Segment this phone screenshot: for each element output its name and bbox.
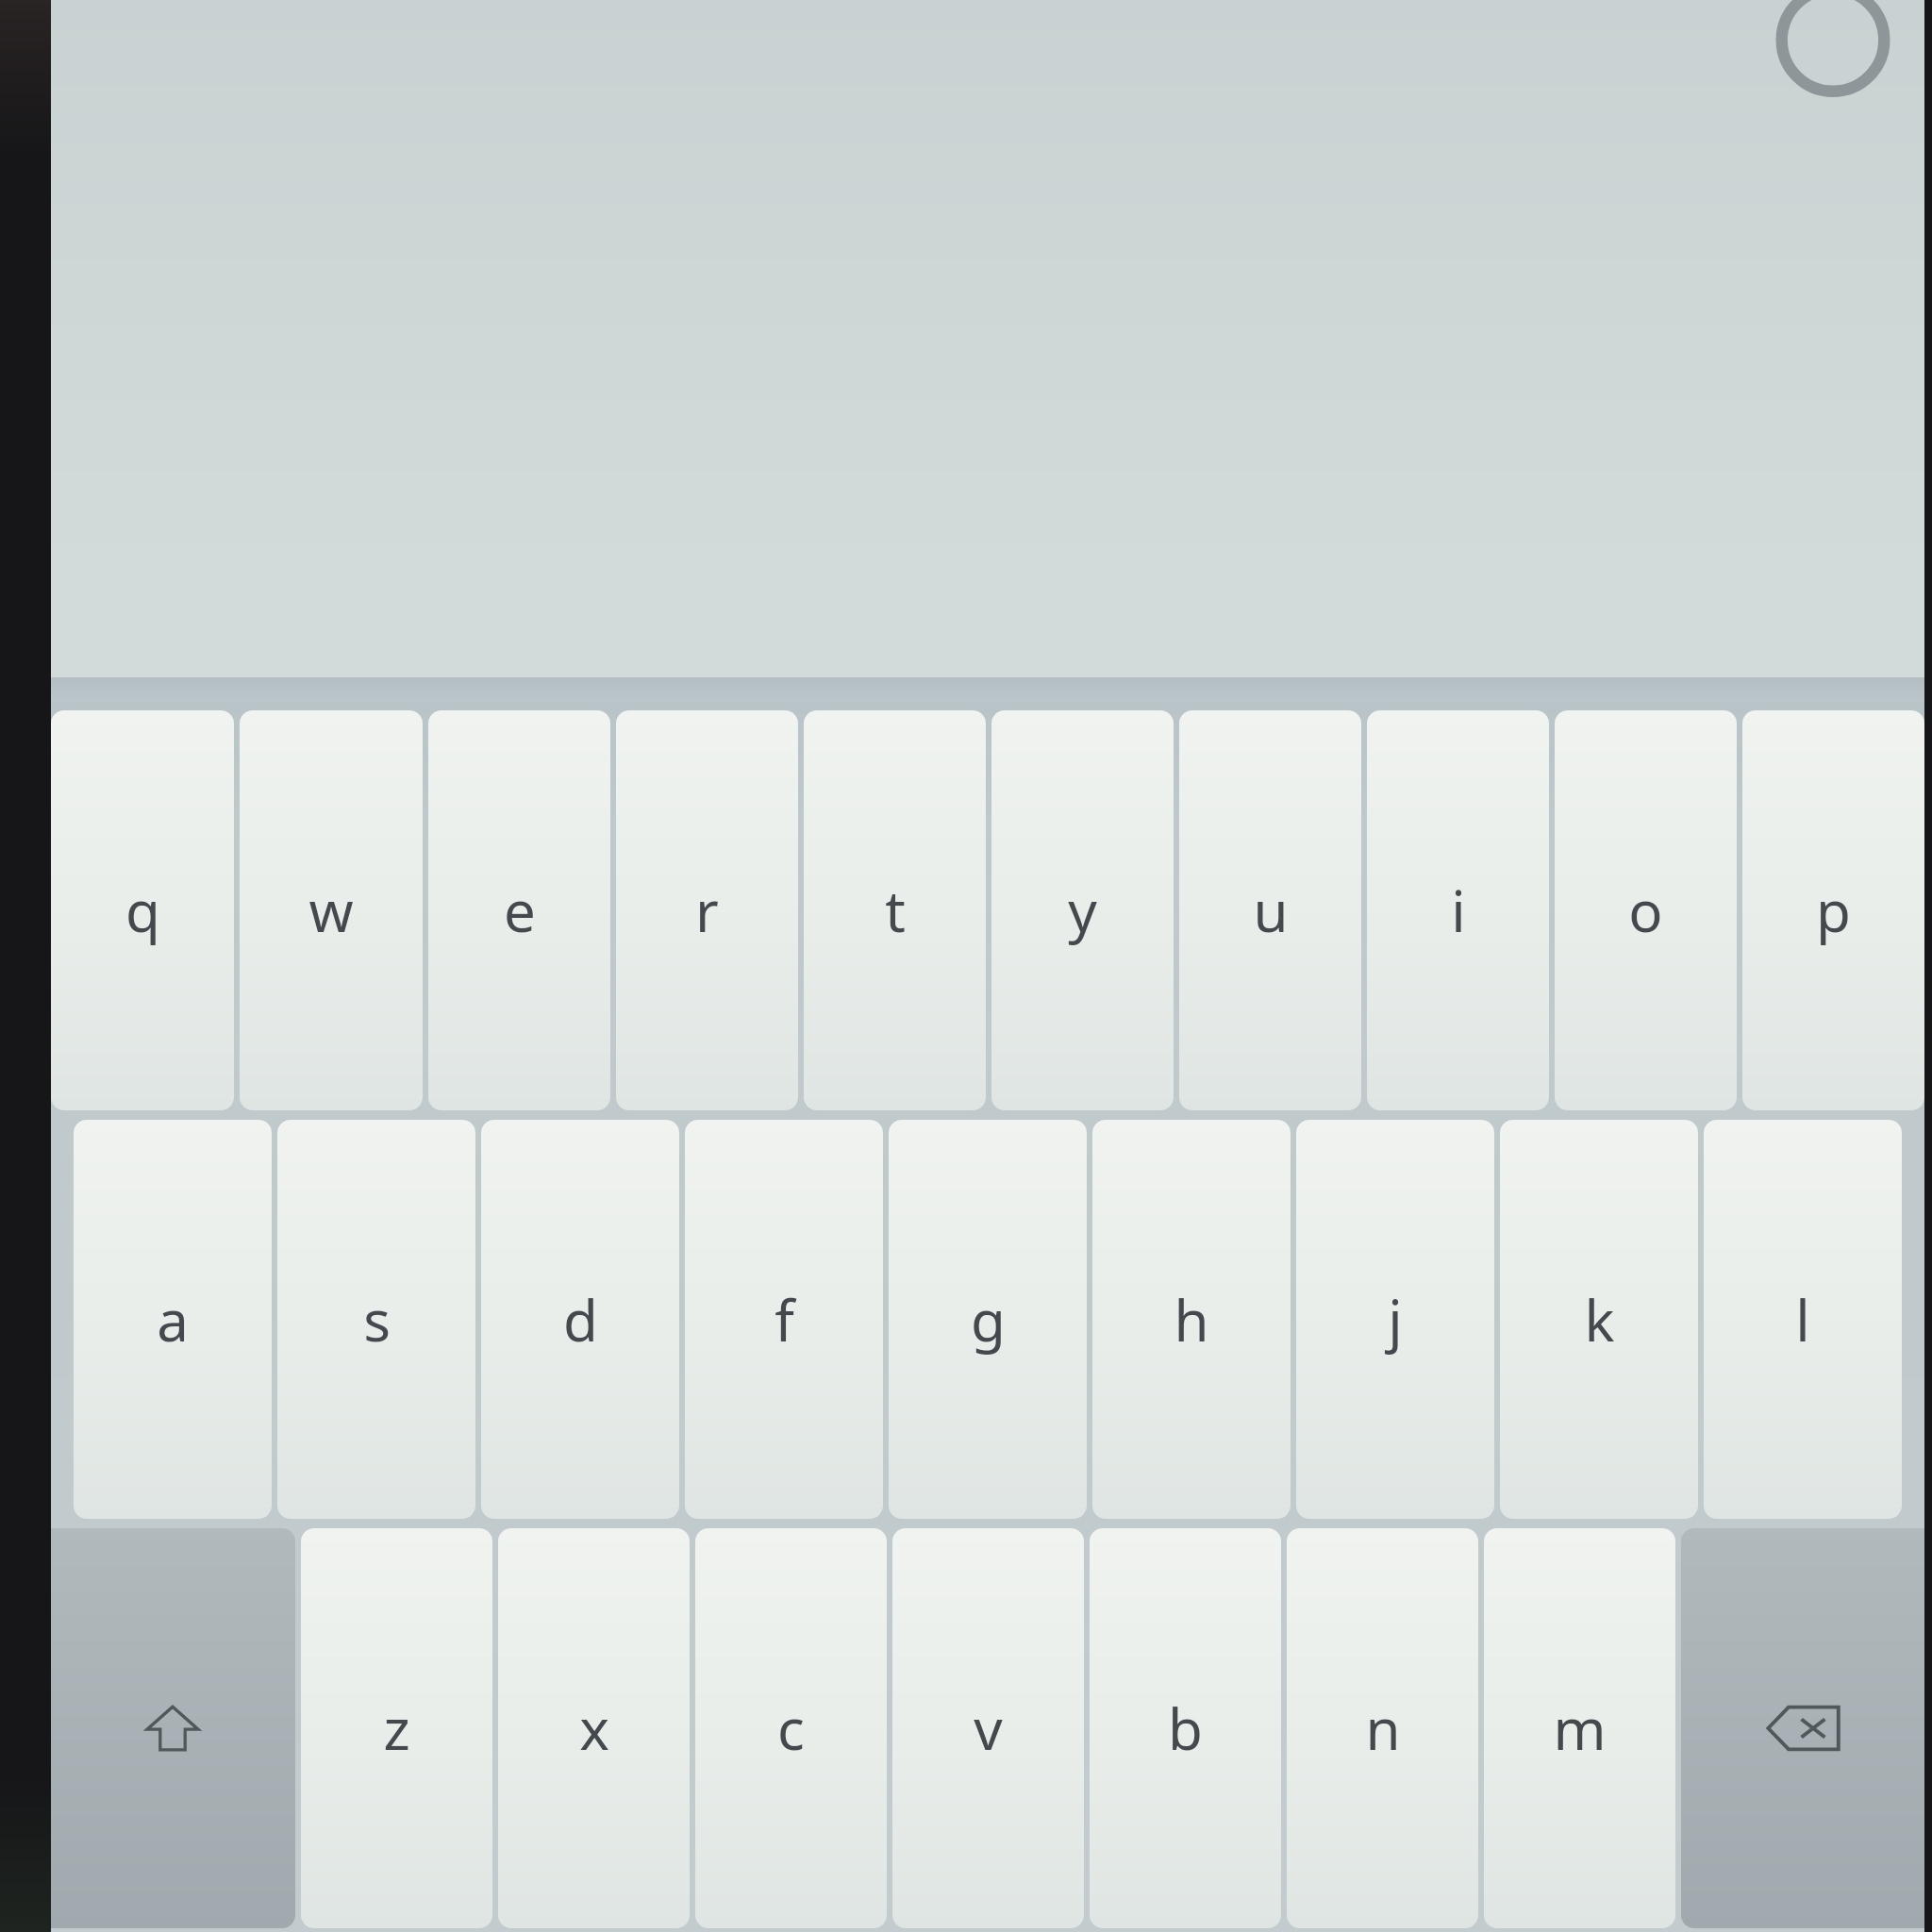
staticText: n	[1365, 1690, 1401, 1767]
button[interactable]: s	[277, 1120, 475, 1519]
button[interactable]: a	[74, 1120, 272, 1519]
staticText: g	[971, 1281, 1006, 1358]
staticText: k	[1584, 1281, 1615, 1358]
button[interactable]: x	[498, 1528, 690, 1928]
button[interactable]: Profile	[1777, 0, 1889, 111]
staticText: q	[125, 872, 160, 949]
staticText: p	[1816, 872, 1851, 949]
button[interactable]: j	[1296, 1120, 1494, 1519]
staticText: v	[974, 1690, 1003, 1767]
button[interactable]: w	[240, 710, 423, 1110]
button[interactable]: g	[889, 1120, 1087, 1519]
staticText: z	[383, 1690, 410, 1767]
staticText: l	[1795, 1281, 1810, 1358]
staticText: i	[1451, 872, 1466, 949]
button[interactable]: o	[1555, 710, 1737, 1110]
button[interactable]: c	[695, 1528, 887, 1928]
button[interactable]: r	[616, 710, 798, 1110]
staticText: c	[777, 1690, 805, 1767]
button[interactable]: f	[685, 1120, 883, 1519]
staticText: o	[1628, 872, 1663, 949]
staticText: d	[563, 1281, 598, 1358]
button[interactable]: m	[1484, 1528, 1675, 1928]
staticText: h	[1174, 1281, 1209, 1358]
button[interactable]: Shift	[49, 1528, 295, 1928]
button[interactable]: y	[991, 710, 1174, 1110]
button[interactable]: v	[892, 1528, 1084, 1928]
button[interactable]: i	[1367, 710, 1549, 1110]
button[interactable]: b	[1090, 1528, 1281, 1928]
button[interactable]: p	[1742, 710, 1924, 1110]
staticText: e	[504, 872, 536, 949]
button[interactable]: u	[1179, 710, 1361, 1110]
staticText: m	[1553, 1690, 1607, 1767]
staticText: t	[885, 872, 906, 949]
button[interactable]: h	[1092, 1120, 1291, 1519]
staticText: r	[695, 872, 719, 949]
staticText: b	[1168, 1690, 1203, 1767]
staticText: a	[157, 1281, 189, 1358]
button[interactable]: d	[481, 1120, 679, 1519]
button[interactable]: q	[51, 710, 234, 1110]
button[interactable]: e	[428, 710, 610, 1110]
button[interactable]: k	[1500, 1120, 1698, 1519]
button[interactable]: Backspace	[1681, 1528, 1926, 1928]
button[interactable]: n	[1287, 1528, 1478, 1928]
staticText: u	[1253, 872, 1289, 949]
staticText: j	[1388, 1281, 1403, 1358]
staticText: y	[1068, 872, 1097, 949]
button[interactable]: t	[804, 710, 986, 1110]
staticText: x	[579, 1690, 609, 1767]
button[interactable]: z	[301, 1528, 492, 1928]
button[interactable]: l	[1704, 1120, 1902, 1519]
staticText: w	[308, 872, 354, 949]
staticText: s	[363, 1281, 391, 1358]
staticText: f	[774, 1281, 794, 1358]
